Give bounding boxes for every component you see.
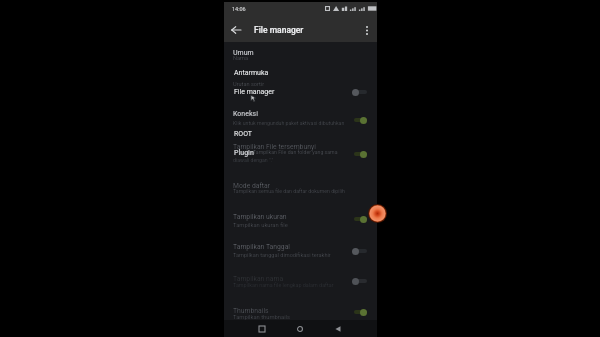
button[interactable] bbox=[224, 268, 375, 294]
staticText: ROOT bbox=[234, 130, 253, 138]
staticText: Tampilkan semua file dan daftar dokumen … bbox=[233, 188, 345, 194]
button[interactable] bbox=[224, 174, 375, 200]
button[interactable]: Switch off bbox=[352, 277, 369, 285]
button[interactable]: Switch off bbox=[352, 88, 369, 96]
staticText: Tampilkan tanggal dimodifikasi terakhir bbox=[233, 252, 331, 259]
button[interactable]: Switch on bbox=[352, 308, 369, 316]
staticText: Antarmuka bbox=[234, 69, 269, 77]
staticText: Thumbnails bbox=[233, 307, 269, 315]
button[interactable] bbox=[224, 118, 375, 140]
button[interactable] bbox=[224, 296, 375, 320]
staticText: Tampilkan nama file lengkap dalam daftar bbox=[233, 282, 334, 288]
button[interactable]: Back bbox=[328, 320, 348, 337]
button[interactable]: Switch on bbox=[352, 215, 369, 223]
staticText: Koneksi bbox=[233, 110, 258, 118]
staticText: Tampilkan File tersembunyi bbox=[233, 143, 316, 151]
button[interactable]: Switch on bbox=[352, 116, 369, 124]
staticText: File manager bbox=[234, 88, 275, 96]
button[interactable] bbox=[224, 238, 375, 264]
button[interactable]: Switch off bbox=[352, 247, 369, 255]
button[interactable]: Recent apps bbox=[252, 320, 272, 337]
button[interactable] bbox=[224, 206, 375, 232]
staticText: Plugin bbox=[234, 149, 254, 157]
staticText: 14:06 bbox=[232, 6, 246, 12]
staticText: Umum bbox=[233, 49, 254, 57]
staticText: Nama bbox=[233, 55, 248, 62]
staticText: diawali dengan "." bbox=[233, 157, 274, 163]
staticText: Tampilkan ukuran bbox=[233, 213, 287, 221]
button[interactable]: Switch on bbox=[352, 150, 369, 158]
button[interactable]: More options bbox=[354, 17, 380, 43]
staticText: Tampilkan File dan folder yang sama bbox=[253, 149, 338, 155]
button[interactable]: Home bbox=[290, 320, 310, 337]
staticText: Tampilkan thumbnails bbox=[233, 314, 290, 321]
button[interactable]: Back bbox=[223, 17, 249, 43]
staticText: Tampilkan ukuran file bbox=[233, 222, 288, 229]
button[interactable] bbox=[224, 44, 375, 56]
button[interactable] bbox=[224, 106, 375, 118]
button[interactable] bbox=[224, 56, 375, 78]
staticText: File manager bbox=[254, 25, 304, 35]
button[interactable] bbox=[224, 78, 375, 100]
staticText: Urutan sortir bbox=[233, 81, 265, 88]
staticText: Tampilkan Tanggal bbox=[233, 243, 291, 251]
staticText: Tampilkan nama bbox=[233, 275, 284, 283]
button[interactable] bbox=[224, 140, 375, 170]
staticText: Klik untuk mengunduh paket aktivasi dibu… bbox=[233, 120, 345, 126]
staticText: Mode daftar bbox=[233, 182, 271, 190]
